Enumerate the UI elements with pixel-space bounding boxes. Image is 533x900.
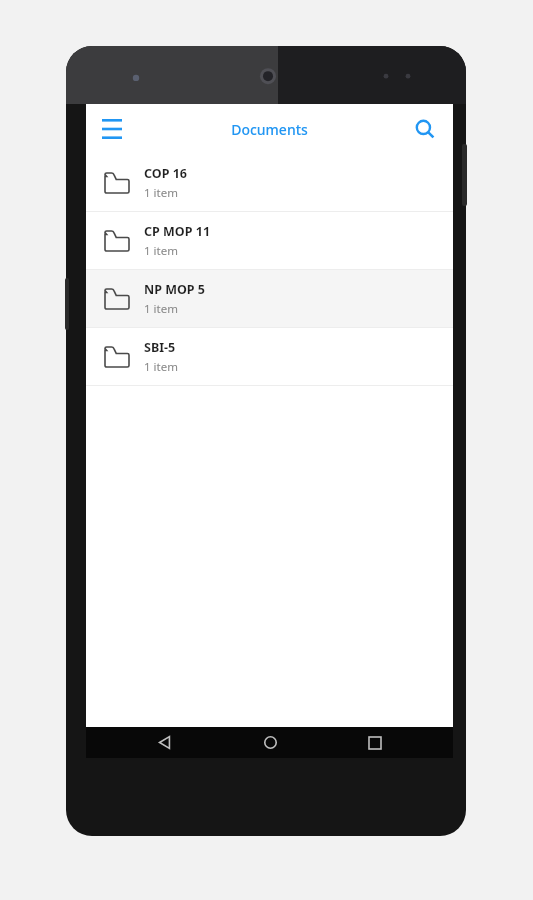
button[interactable]: COP 16 [86,154,453,211]
button[interactable]: Recent apps [347,727,403,758]
staticText: Documents [231,120,308,139]
staticText: 1 item [144,243,178,259]
button[interactable]: Back [136,727,192,758]
button[interactable]: Open navigation menu [90,107,134,151]
staticText: 1 item [144,359,178,375]
button[interactable]: SBI-5 [86,328,453,385]
staticText: CP MOP 11 [144,223,211,240]
button[interactable]: NP MOP 5 [86,270,453,327]
staticText: 1 item [144,301,178,317]
staticText: SBI-5 [144,339,176,356]
button[interactable]: CP MOP 11 [86,212,453,269]
button[interactable]: Search [403,107,447,151]
staticText: NP MOP 5 [144,281,206,298]
staticText: COP 16 [144,165,187,182]
button[interactable]: Home [242,727,298,758]
staticText: 1 item [144,185,178,201]
